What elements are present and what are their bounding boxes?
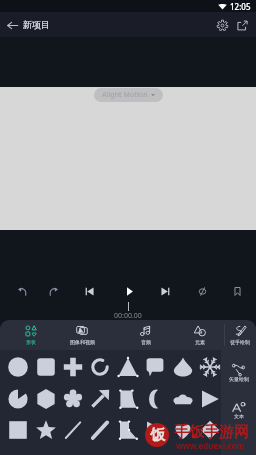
button[interactable]: Shape 14: [142, 386, 168, 412]
staticText: Alight Motion: [102, 90, 148, 100]
staticText: www.eduexi.com: [176, 440, 245, 451]
staticText: 文本: [234, 413, 244, 419]
button[interactable]: 音频: [122, 320, 170, 350]
button[interactable]: 文本: [221, 401, 256, 419]
button[interactable]: Shape 15: [170, 386, 196, 412]
button[interactable]: Undo: [13, 282, 31, 300]
button[interactable]: Redo: [44, 282, 62, 300]
button[interactable]: Shape 5: [115, 354, 141, 380]
button[interactable]: Shape 3: [60, 354, 86, 380]
button[interactable]: Skip to start: [80, 282, 98, 300]
button[interactable]: Shape 19: [60, 417, 86, 443]
staticText: 12:05: [230, 1, 251, 12]
button[interactable]: Shape 7: [170, 354, 196, 380]
button[interactable]: Shape 18: [33, 417, 59, 443]
button[interactable]: Shape 16: [197, 386, 223, 412]
button[interactable]: Back: [2, 15, 22, 35]
button[interactable]: 徒手绘制: [216, 320, 256, 350]
button[interactable]: Shape 13: [115, 386, 141, 412]
button[interactable]: Shape 17: [5, 417, 31, 443]
button[interactable]: Shape 12: [87, 386, 113, 412]
button[interactable]: 元素: [176, 320, 224, 350]
staticText: 新项目: [23, 19, 50, 30]
button[interactable]: Shape 2: [33, 354, 59, 380]
button[interactable]: Loop: [193, 282, 211, 300]
staticText: 元素: [195, 339, 205, 345]
staticText: 00:00.00: [114, 311, 142, 321]
button[interactable]: Export: [232, 15, 252, 35]
button[interactable]: 形状: [7, 320, 55, 350]
button[interactable]: Shape 20: [87, 417, 113, 443]
button[interactable]: Shape 23: [170, 417, 196, 443]
button[interactable]: 矢量绘制: [221, 362, 256, 382]
button[interactable]: Shape 10: [33, 386, 59, 412]
staticText: 图像和视频: [70, 339, 95, 345]
button[interactable]: Shape 1: [5, 354, 31, 380]
button[interactable]: Shape 24: [197, 417, 223, 443]
staticText: 矢量绘制: [229, 376, 249, 382]
button[interactable]: Shape 21: [115, 417, 141, 443]
button[interactable]: Bookmark: [228, 282, 246, 300]
staticText: 形状: [26, 339, 36, 345]
button[interactable]: Shape 11: [60, 386, 86, 412]
staticText: 手饭手游网: [174, 423, 249, 442]
button[interactable]: Skip to end: [156, 282, 174, 300]
button[interactable]: Settings: [212, 15, 232, 35]
button[interactable]: 图像和视频: [58, 320, 106, 350]
staticText: 音频: [141, 339, 151, 345]
button[interactable]: Shape 4: [87, 354, 113, 380]
button[interactable]: Shape 22: [142, 417, 168, 443]
button[interactable]: Play: [120, 282, 138, 300]
button[interactable]: Shape 6: [142, 354, 168, 380]
button[interactable]: Alight Motion: [102, 90, 155, 100]
staticText: 徒手绘制: [230, 339, 250, 345]
button[interactable]: Shape 9: [5, 386, 31, 412]
button[interactable]: Shape 8: [197, 354, 223, 380]
staticText: 饭: [150, 426, 165, 445]
